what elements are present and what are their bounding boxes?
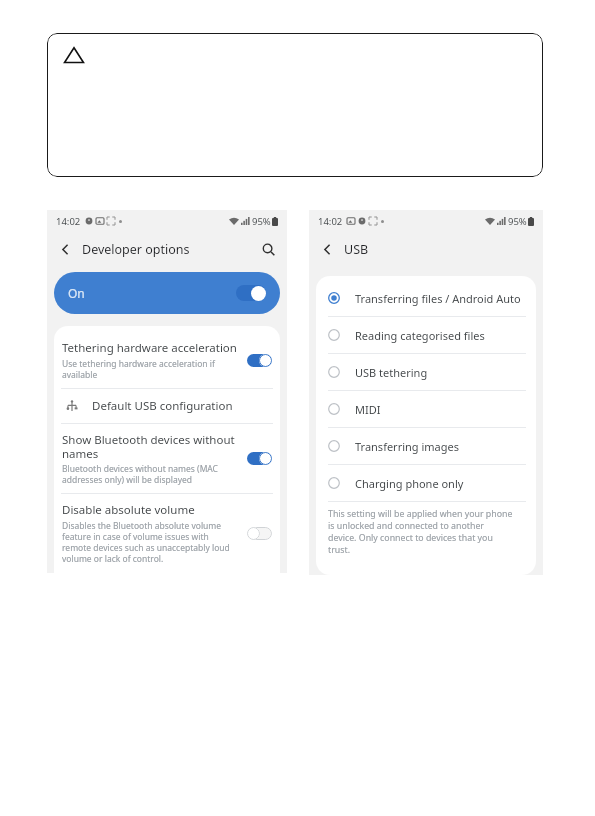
staticText: Tethering hardware acceleration xyxy=(62,340,237,356)
staticText: USB tethering xyxy=(355,365,428,380)
button[interactable]: On xyxy=(247,452,272,465)
button[interactable]: Back xyxy=(318,240,336,258)
staticText: On xyxy=(68,285,85,301)
button[interactable]: Off xyxy=(247,527,272,540)
staticText: Disables the Bluetooth absolute volume f… xyxy=(62,520,230,564)
staticText: Use tethering hardware acceleration if a… xyxy=(62,358,215,380)
other: USB xyxy=(66,400,78,412)
staticText: Transferring files / Android Auto xyxy=(355,291,521,306)
staticText: This setting will be applied when your p… xyxy=(328,508,513,556)
button[interactable]: On xyxy=(247,354,272,367)
staticText: Bluetooth devices without names (MAC add… xyxy=(62,463,218,485)
other: Warning xyxy=(63,44,85,66)
button[interactable]: MIDI xyxy=(316,391,536,427)
button[interactable]: Search xyxy=(258,239,278,259)
staticText: MIDI xyxy=(355,402,381,417)
button[interactable]: Reading categorised files xyxy=(316,317,536,353)
button[interactable]: Tethering hardware acceleration xyxy=(54,332,280,388)
button[interactable]: Transferring images xyxy=(316,428,536,464)
staticText: Reading categorised files xyxy=(355,328,485,343)
staticText: 14:02 xyxy=(318,215,343,228)
button[interactable]: Transferring files / Android Auto xyxy=(316,280,536,316)
button[interactable]: Disable absolute volume xyxy=(54,494,280,572)
staticText: 14:02 xyxy=(56,215,81,228)
staticText: Default USB configuration xyxy=(92,398,233,414)
button[interactable]: Charging phone only xyxy=(316,465,536,501)
staticText: Show Bluetooth devices without names xyxy=(62,432,235,461)
staticText: Charging phone only xyxy=(355,476,464,491)
staticText: Transferring images xyxy=(355,439,459,454)
staticText: USB xyxy=(344,241,369,258)
staticText: 95% xyxy=(508,215,527,228)
staticText: Developer options xyxy=(82,241,190,258)
button[interactable]: Show Bluetooth devices without names xyxy=(54,424,280,493)
button[interactable]: Developer options on xyxy=(236,285,266,301)
staticText: 95% xyxy=(252,215,271,228)
button[interactable]: On xyxy=(54,272,280,314)
button[interactable]: Back xyxy=(56,240,74,258)
button[interactable]: USB tethering xyxy=(316,354,536,390)
button[interactable]: USB xyxy=(54,389,280,423)
staticText: Disable absolute volume xyxy=(62,502,195,518)
